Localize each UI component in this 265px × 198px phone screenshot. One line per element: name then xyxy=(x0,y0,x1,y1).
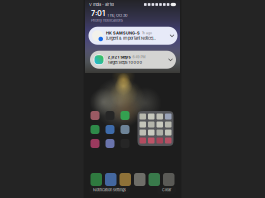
staticText: 7:01 xyxy=(91,9,105,18)
staticText: 2,021 steps xyxy=(107,55,130,59)
staticText: 6:49 PM xyxy=(132,55,145,59)
staticText: Clear xyxy=(162,188,171,192)
button[interactable]: HK SAMSUNG-S xyxy=(88,27,177,45)
staticText: HK SAMSUNG-S xyxy=(106,31,140,35)
staticText: [Urgent & Important Notice]... xyxy=(106,36,156,41)
button[interactable]: 2,021 steps xyxy=(90,51,176,69)
staticText: 1h ago xyxy=(142,31,152,35)
button[interactable]: Notification settings xyxy=(89,186,130,194)
staticText: Priority notifications xyxy=(91,18,123,23)
staticText: V India - airtel xyxy=(89,2,114,7)
staticText: Notification settings xyxy=(93,188,126,192)
staticText: Target steps 10000 xyxy=(107,60,142,65)
button[interactable]: Clear xyxy=(157,186,176,194)
staticText: Thu, Oct 30 xyxy=(107,13,128,18)
